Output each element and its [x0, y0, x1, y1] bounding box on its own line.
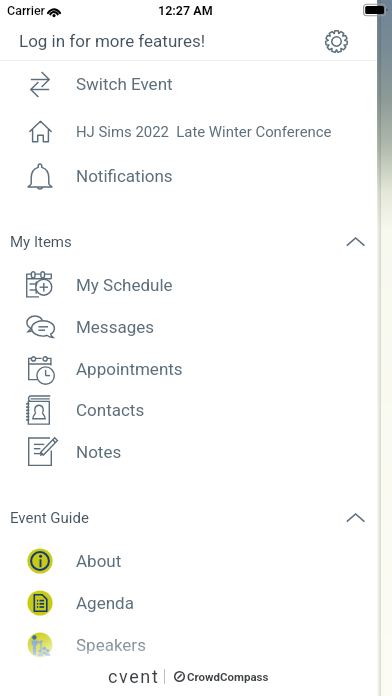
staticText: Appointments	[76, 359, 183, 379]
button[interactable]: Log in for more features!	[19, 31, 206, 51]
staticText: Carrier	[7, 3, 46, 18]
staticText: My Schedule	[76, 275, 173, 295]
button[interactable]: Switch Event	[0, 63, 377, 105]
staticText: Speakers	[76, 635, 146, 655]
button[interactable]: Settings	[323, 28, 349, 54]
staticText: Contacts	[76, 400, 145, 420]
button[interactable]: Event Guide	[0, 498, 377, 538]
staticText: About	[76, 551, 122, 571]
button[interactable]: Notifications	[0, 155, 377, 197]
button[interactable]: HJ Sims 2022 Late Winter Conference	[0, 110, 377, 152]
staticText: CrowdCompass	[187, 670, 269, 683]
button[interactable]: My Schedule	[0, 264, 377, 306]
button[interactable]: Notes	[0, 431, 377, 473]
staticText: Event Guide	[10, 509, 89, 527]
button[interactable]: Contacts	[0, 389, 377, 431]
staticText: Messages	[76, 317, 154, 337]
staticText: My Items	[10, 233, 72, 251]
staticText: HJ Sims 2022 Late Winter Conference	[76, 123, 332, 140]
staticText: 12:27 AM	[158, 3, 213, 18]
staticText: Notifications	[76, 166, 173, 186]
button[interactable]: Messages	[0, 306, 377, 348]
button[interactable]: Speakers	[0, 624, 377, 666]
button[interactable]: Agenda	[0, 582, 377, 624]
button[interactable]: Appointments	[0, 348, 377, 390]
staticText: cvent	[108, 666, 160, 687]
staticText: Notes	[76, 442, 122, 462]
button[interactable]: About	[0, 540, 377, 582]
staticText: Switch Event	[76, 74, 173, 94]
button[interactable]: My Items	[0, 222, 377, 262]
staticText: Agenda	[76, 593, 134, 613]
